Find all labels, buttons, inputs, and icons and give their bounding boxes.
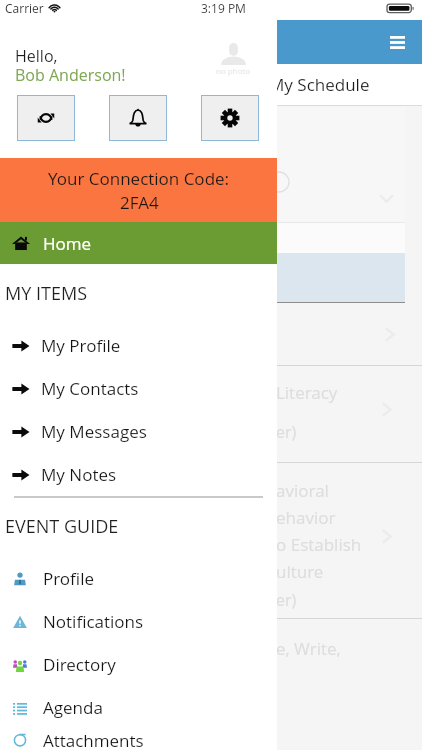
staticText: no photo (216, 65, 251, 76)
button[interactable] (0, 253, 405, 302)
button[interactable]: avioral (0, 463, 422, 618)
staticText: Literacy (276, 381, 338, 404)
staticText: Profile (43, 567, 94, 590)
staticText: Agenda (43, 696, 103, 719)
staticText: Directory (43, 653, 116, 676)
staticText: EVENT GUIDE (5, 514, 119, 539)
staticText: Attachments (43, 729, 144, 750)
staticText: My Messages (41, 420, 147, 443)
button[interactable] (0, 107, 422, 222)
staticText: Bob Anderson! (15, 64, 126, 86)
staticText: My Profile (41, 334, 121, 357)
staticText: e, Write, (276, 637, 341, 660)
button[interactable]: My Profile (0, 324, 277, 367)
staticText: ulture (276, 560, 324, 583)
button[interactable]: Notifications (109, 95, 167, 141)
button[interactable]: My Contacts (0, 367, 277, 410)
button[interactable]: Open navigation menu (380, 25, 414, 59)
staticText: My Notes (41, 463, 117, 486)
button[interactable]: Profile (0, 557, 277, 600)
button[interactable]: e, Write, (0, 619, 422, 679)
button[interactable]: Literacy (0, 366, 422, 462)
staticText: er) (276, 589, 297, 611)
button[interactable]: Agenda (0, 686, 277, 729)
staticText: My Schedule (269, 73, 370, 96)
staticText: Hello, (15, 45, 58, 67)
button[interactable]: Directory (0, 643, 277, 686)
staticText: ehavior (276, 506, 336, 529)
staticText: 2FA4 (120, 191, 159, 214)
staticText: er) (276, 421, 297, 443)
button[interactable]: Your Connection Code: (0, 158, 277, 222)
staticText: o Establish (276, 533, 362, 556)
staticText: Carrier (5, 0, 44, 16)
staticText: MY ITEMS (5, 281, 88, 306)
button[interactable] (0, 303, 422, 365)
staticText: Home (43, 232, 92, 255)
button[interactable]: Settings (201, 95, 259, 141)
button[interactable]: Attachments (0, 729, 277, 750)
staticText: My Contacts (41, 377, 139, 400)
staticText: avioral (276, 479, 329, 502)
staticText: 3:19 PM (201, 0, 246, 16)
button[interactable]: My Messages (0, 410, 277, 453)
button[interactable]: Home (0, 222, 277, 264)
staticText: Notifications (43, 610, 144, 633)
staticText: Your Connection Code: (48, 167, 230, 190)
button[interactable]: My Notes (0, 453, 277, 496)
button[interactable]: Refresh (17, 95, 75, 141)
button[interactable]: Notifications (0, 600, 277, 643)
